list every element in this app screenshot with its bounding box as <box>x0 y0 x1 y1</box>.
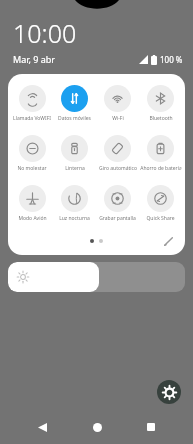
staticText: 100 % <box>160 54 183 65</box>
button[interactable]: Llamada VoWIFI <box>11 83 53 124</box>
staticText: Quick Share <box>146 215 175 222</box>
button[interactable]: Ahorro de batería <box>139 133 182 174</box>
button[interactable]: Atrás <box>29 414 55 440</box>
button[interactable]: Linterna <box>53 133 96 174</box>
staticText: Modo Avión <box>18 215 47 222</box>
staticText: Llamada VoWIFI <box>13 115 51 122</box>
button[interactable]: No molestar <box>11 133 53 174</box>
button[interactable]: Grabar pantalla <box>96 183 139 224</box>
button[interactable]: Brillo <box>8 262 185 292</box>
button[interactable]: Ajustes <box>157 380 181 404</box>
button[interactable]: Editar <box>159 232 177 250</box>
staticText: Grabar pantalla <box>99 215 136 222</box>
staticText: Mar, 9 abr <box>13 53 56 65</box>
staticText: No molestar <box>17 165 47 172</box>
button[interactable]: Giro automático <box>96 133 139 174</box>
staticText: 10:00 <box>13 16 77 50</box>
staticText: Wi-Fi <box>112 115 124 122</box>
button[interactable]: Bluetooth <box>139 83 182 124</box>
button[interactable]: Modo Avión <box>11 183 53 224</box>
button[interactable]: Quick Share <box>139 183 182 224</box>
staticText: Luz nocturna <box>59 215 90 222</box>
button[interactable]: Datos móviles <box>53 83 96 124</box>
staticText: Bluetooth <box>149 115 173 122</box>
button[interactable]: Luz nocturna <box>53 183 96 224</box>
staticText: Ahorro de batería <box>140 165 182 172</box>
button[interactable]: Recientes <box>138 414 164 440</box>
button[interactable]: Inicio <box>84 414 110 440</box>
staticText: Giro automático <box>99 165 137 172</box>
button[interactable]: Wi-Fi <box>96 83 139 124</box>
staticText: Linterna <box>65 165 85 172</box>
staticText: Datos móviles <box>58 115 91 122</box>
